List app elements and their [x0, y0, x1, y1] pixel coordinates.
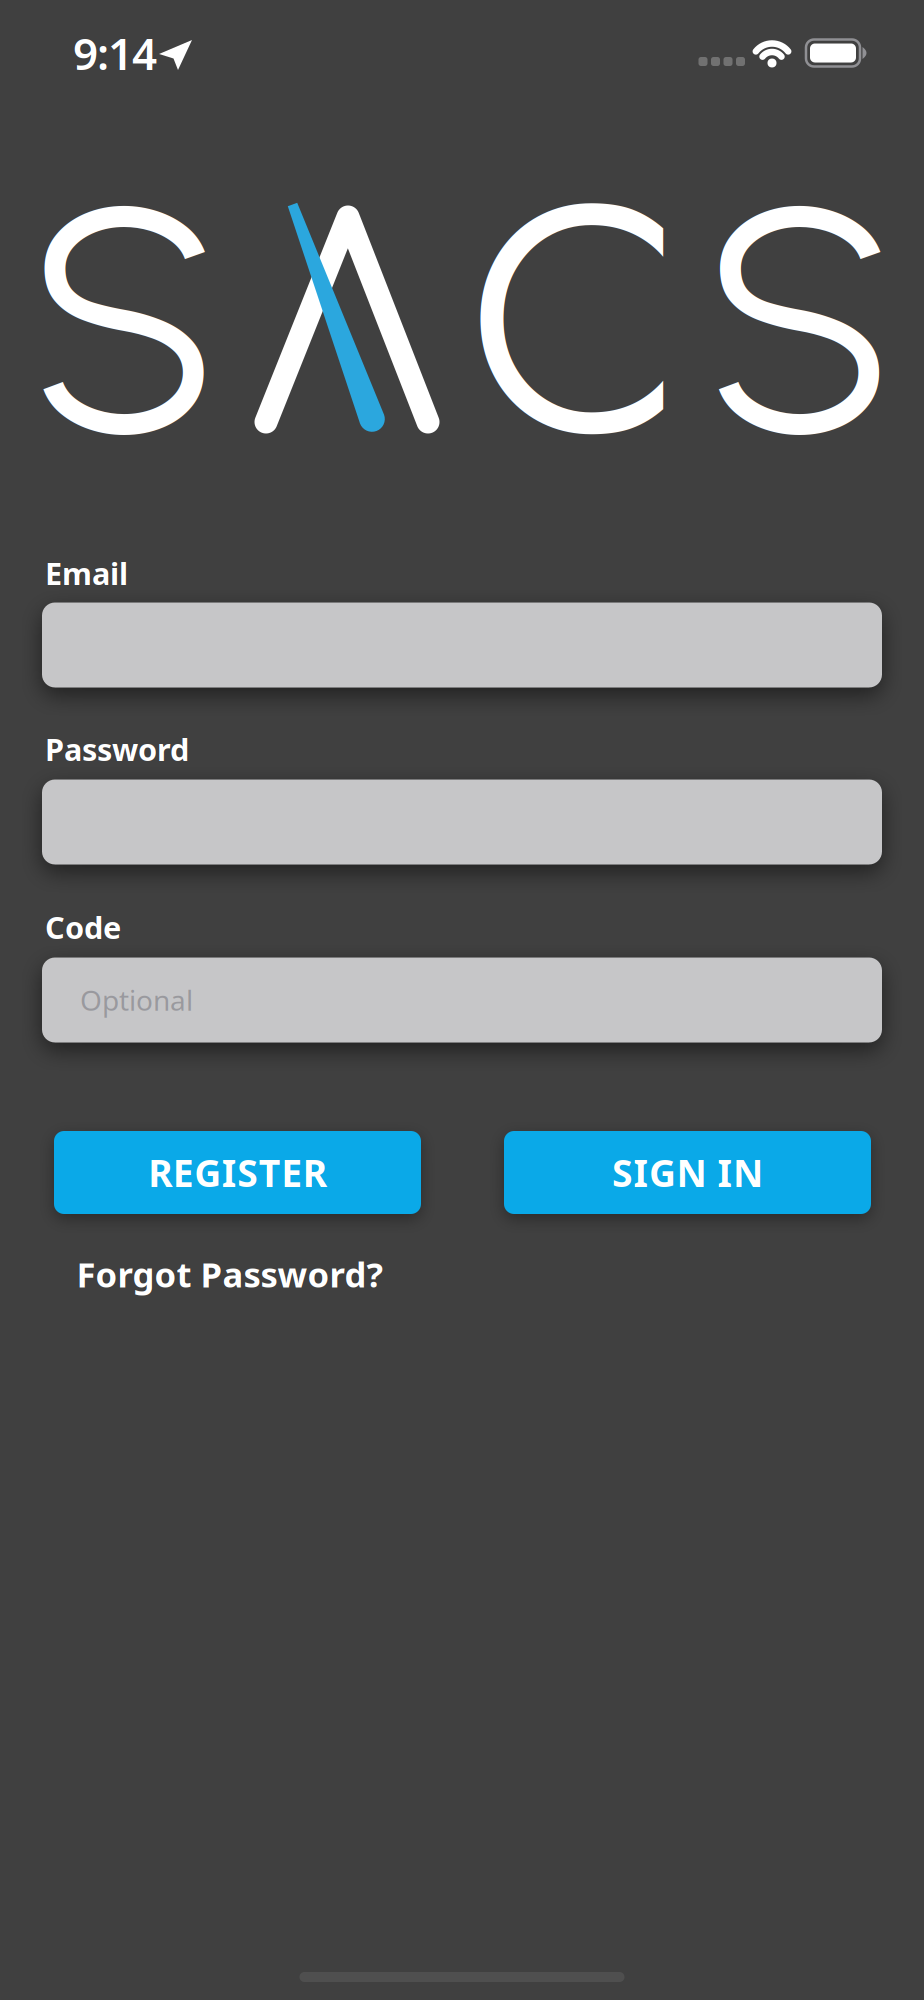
button[interactable]: SIGN IN [504, 1131, 871, 1214]
button[interactable]: Forgot Password? [76, 1251, 383, 1297]
staticText: Optional [80, 981, 193, 1019]
button[interactable]: REGISTER [54, 1131, 421, 1214]
staticText: S [703, 130, 896, 510]
staticText: SIGN IN [612, 1148, 763, 1197]
staticText: S [27, 130, 220, 510]
staticText: 9:14 [73, 24, 157, 82]
staticText: Email [45, 553, 128, 593]
staticText: Code [45, 907, 121, 947]
staticText: REGISTER [148, 1148, 327, 1197]
button[interactable]: Password [42, 779, 882, 864]
button[interactable]: Email [42, 602, 882, 687]
button[interactable]: Code [0, 957, 924, 1042]
staticText: C [467, 89, 686, 551]
staticText: Password [45, 729, 189, 769]
staticText: Forgot Password? [76, 1251, 383, 1297]
